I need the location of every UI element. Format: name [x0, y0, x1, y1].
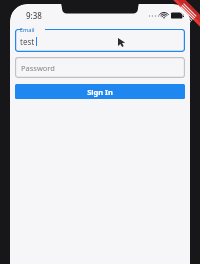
staticText: 9:38: [26, 10, 42, 21]
button[interactable]: Email: [15, 26, 185, 52]
staticText: Email: [20, 26, 35, 33]
button[interactable]: Sign In: [15, 84, 185, 99]
button[interactable]: Password: [15, 57, 185, 78]
other: Debug banner: [162, 0, 200, 38]
staticText: Sign In: [87, 87, 113, 97]
staticText: Password: [21, 63, 55, 73]
staticText: test: [20, 36, 35, 47]
